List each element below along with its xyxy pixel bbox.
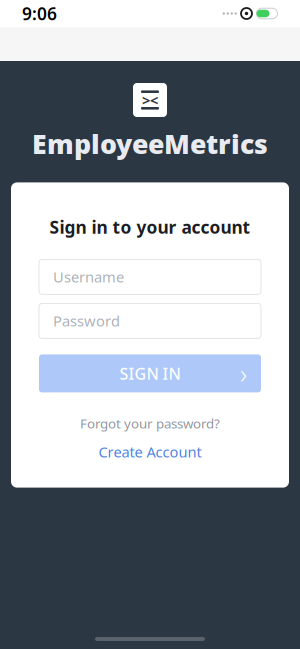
staticText: Forgot your password? xyxy=(80,414,220,432)
staticText: EmployeeMetrics xyxy=(32,126,268,161)
staticText: Username xyxy=(53,267,124,287)
staticText: Create Account xyxy=(98,442,201,462)
button[interactable]: Create Account xyxy=(90,439,209,465)
button[interactable]: Username xyxy=(39,259,261,294)
staticText: Sign in to your account xyxy=(49,215,250,238)
staticText: › xyxy=(240,356,247,391)
staticText: Password xyxy=(53,311,120,331)
staticText: >< xyxy=(142,90,158,110)
staticText: SIGN IN xyxy=(119,363,180,384)
button[interactable]: SIGN IN xyxy=(39,354,261,392)
staticText: 9:06 xyxy=(22,2,57,25)
button[interactable]: Password xyxy=(39,303,261,338)
button[interactable]: Forgot your password? xyxy=(72,411,228,435)
